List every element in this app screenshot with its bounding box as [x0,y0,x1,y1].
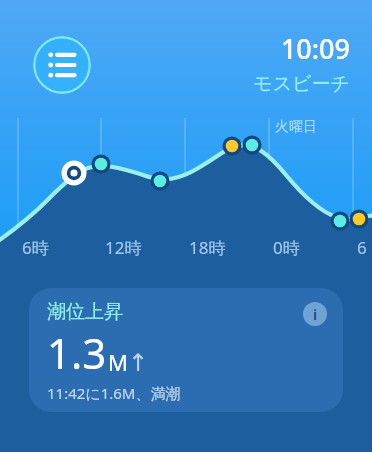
staticText: 6 [357,236,367,259]
staticText: ↑ [128,349,149,377]
staticText: 11:42に1.6M、満潮 [47,383,181,403]
staticText: i [313,305,318,324]
staticText: 1.3 [47,324,107,381]
staticText: 12時 [105,236,142,259]
button[interactable]: 潮位上昇 [29,288,343,412]
button[interactable]: Locations list [33,36,91,94]
staticText: 10:09 [280,30,350,67]
staticText: モスビーチ [253,72,350,96]
staticText: 火曜日 [275,118,317,136]
staticText: 潮位上昇 [47,300,123,324]
staticText: 6時 [22,236,49,259]
button[interactable]: Info [303,302,327,326]
staticText: 0時 [273,236,300,259]
staticText: 18時 [189,236,226,259]
staticText: M [108,347,128,377]
